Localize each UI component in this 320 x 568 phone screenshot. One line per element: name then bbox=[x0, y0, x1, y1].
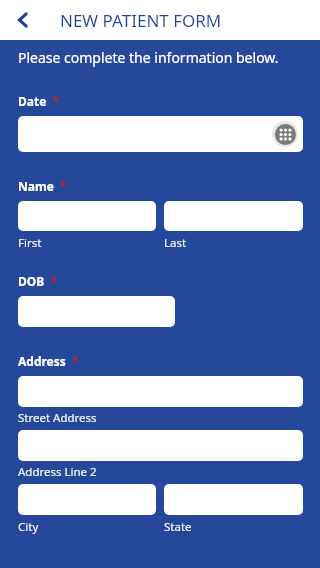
staticText: City bbox=[18, 519, 39, 535]
button[interactable]: Pick date bbox=[18, 116, 303, 152]
staticText: State bbox=[164, 519, 192, 535]
button[interactable]: Back bbox=[0, 0, 46, 40]
button[interactable] bbox=[18, 296, 175, 327]
staticText: NEW PATIENT FORM bbox=[60, 9, 222, 32]
staticText: Last bbox=[164, 235, 187, 251]
staticText: Address Line 2 bbox=[18, 464, 97, 480]
staticText: DOB * bbox=[18, 273, 58, 289]
staticText: Address * bbox=[18, 353, 79, 369]
staticText: Name * bbox=[18, 178, 67, 194]
button[interactable] bbox=[164, 201, 303, 231]
staticText: Street Address bbox=[18, 410, 97, 426]
staticText: First bbox=[18, 235, 42, 251]
staticText: Date * bbox=[18, 93, 60, 109]
button[interactable]: Pick date bbox=[272, 121, 298, 147]
button[interactable] bbox=[18, 484, 156, 515]
button[interactable] bbox=[164, 484, 303, 515]
button[interactable] bbox=[18, 376, 303, 407]
button[interactable] bbox=[18, 201, 156, 231]
button[interactable] bbox=[18, 430, 303, 461]
staticText: Please complete the information below. bbox=[18, 48, 279, 67]
